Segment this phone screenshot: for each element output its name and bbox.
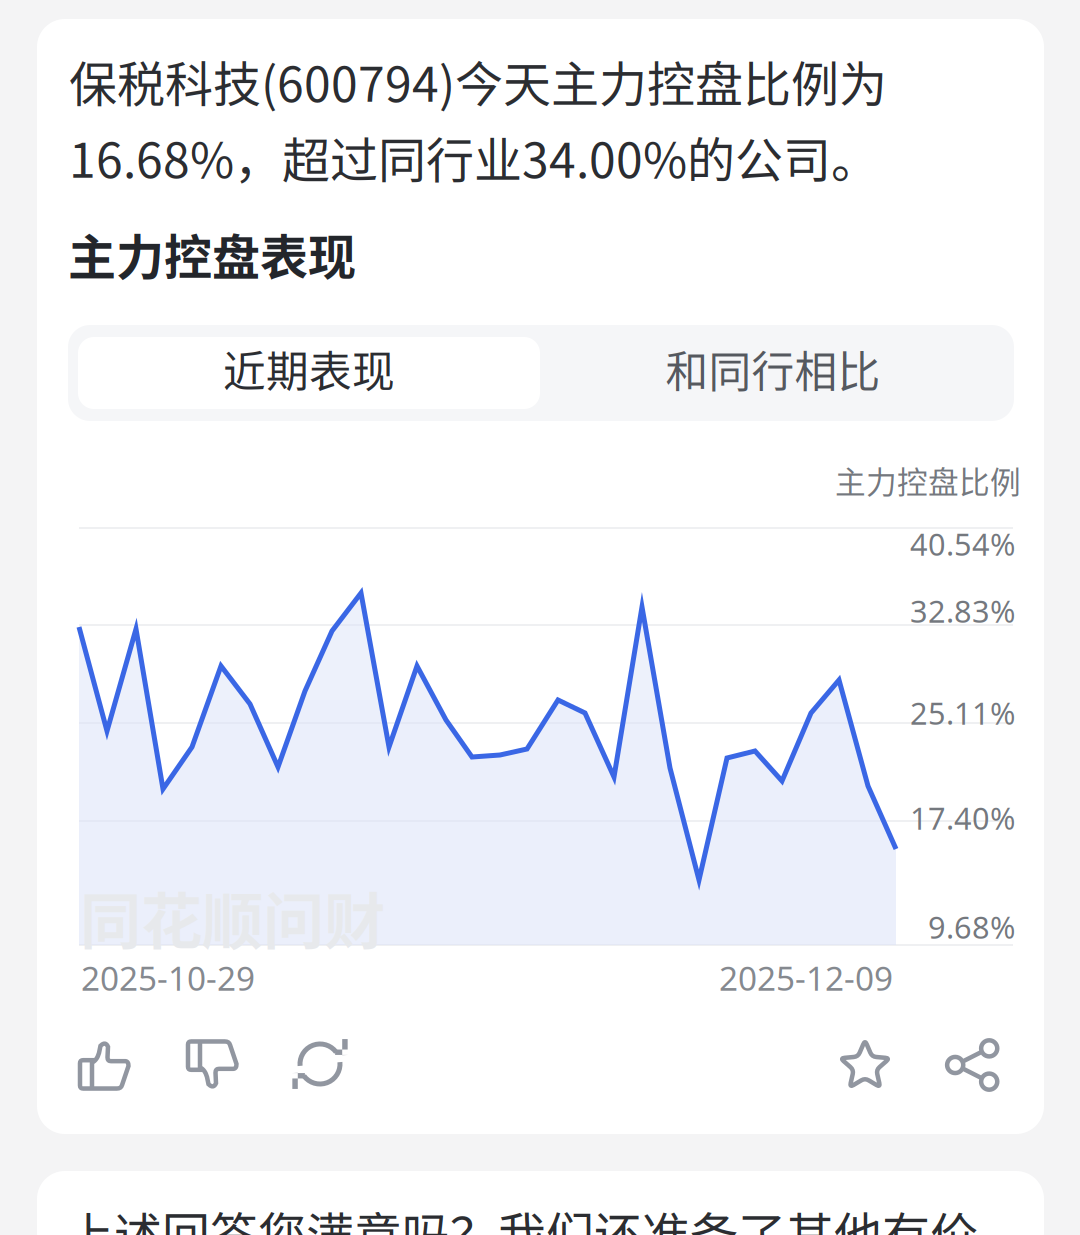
staticText: 9.68% <box>928 906 1015 948</box>
button[interactable]: 近期表现 <box>78 337 540 409</box>
button[interactable]: Share <box>933 1026 1013 1104</box>
staticText: 16.68%，超过同行业34.00%的公司。 <box>69 122 879 191</box>
staticText: 同花顺问财 <box>80 873 385 962</box>
staticText: 17.40% <box>910 797 1015 839</box>
staticText: 和同行相比 <box>665 338 880 400</box>
staticText: 2025-10-29 <box>81 955 255 1000</box>
staticText: 40.54% <box>910 523 1015 565</box>
button[interactable]: Regenerate <box>282 1024 358 1104</box>
button[interactable]: Like <box>65 1027 143 1103</box>
staticText: 近期表现 <box>223 338 395 400</box>
staticText: 主力控盘表现 <box>68 219 356 288</box>
staticText: 25.11% <box>910 692 1015 734</box>
staticText: 保税科技(600794)今天主力控盘比例为 <box>69 46 887 115</box>
button[interactable]: Dislike <box>173 1027 251 1103</box>
staticText: 2025-12-09 <box>719 955 893 1000</box>
staticText: 主力控盘比例 <box>835 458 1021 502</box>
staticText: 32.83% <box>910 590 1015 632</box>
button[interactable]: Favorite <box>824 1023 906 1103</box>
staticText: 上述回答您满意吗？我们还准备了其他有价 <box>66 1197 978 1235</box>
button[interactable]: 和同行相比 <box>542 337 1004 409</box>
